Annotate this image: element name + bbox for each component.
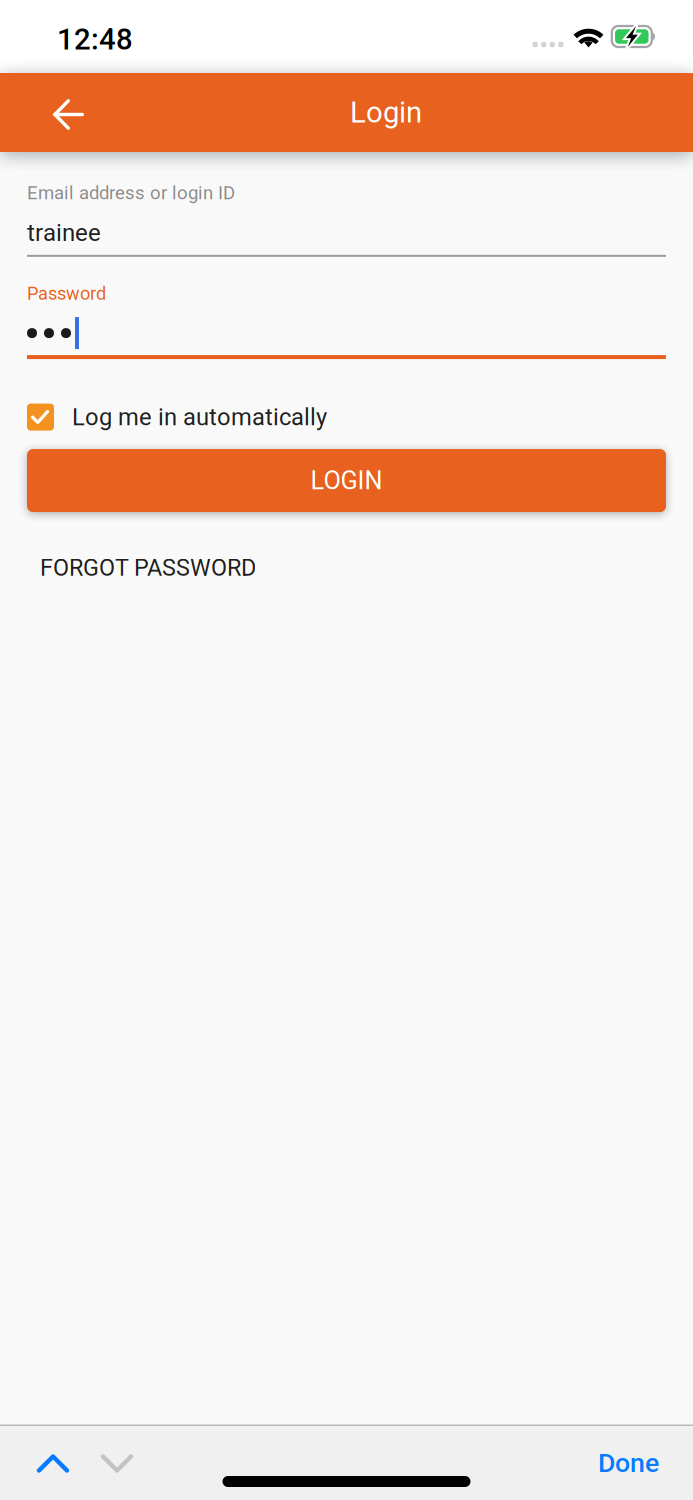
staticText: Login (350, 95, 422, 130)
staticText: Log me in automatically (72, 403, 327, 431)
staticText: Password (27, 283, 106, 304)
staticText: LOGIN (310, 466, 382, 495)
staticText: Done (598, 1447, 659, 1479)
staticText: 12:48 (57, 22, 133, 57)
button[interactable]: LOGIN (27, 449, 666, 512)
button[interactable]: FORGOT PASSWORD (27, 544, 256, 591)
staticText: Email address or login ID (27, 182, 235, 204)
button[interactable]: Previous field (20, 1436, 86, 1490)
staticText: trainee (27, 219, 101, 247)
button[interactable]: Next field (86, 1436, 152, 1490)
button[interactable]: Back (0, 73, 108, 152)
button[interactable]: Log me in automatically (27, 402, 666, 432)
button[interactable]: Done (580, 1436, 677, 1490)
staticText: FORGOT PASSWORD (40, 554, 256, 581)
